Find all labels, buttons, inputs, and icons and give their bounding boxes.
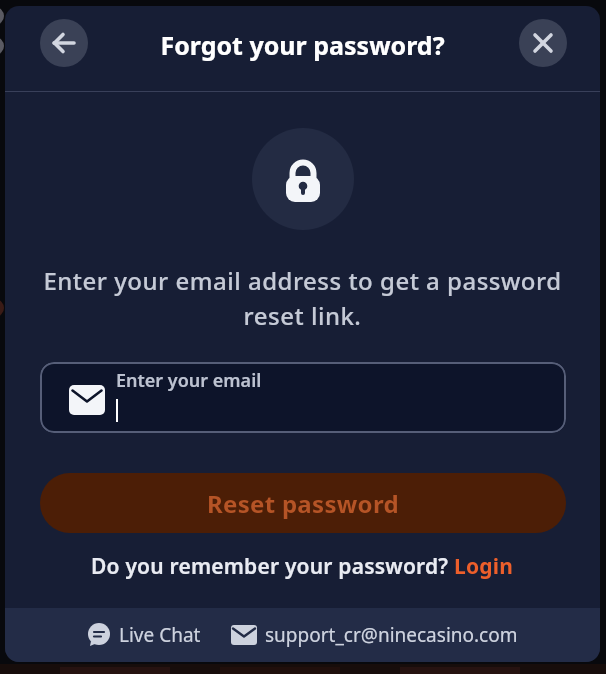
staticText: Enter your email — [116, 368, 262, 393]
staticText: Reset password — [207, 487, 399, 520]
staticText: Enter your email address to get a passwo… — [5, 264, 600, 332]
button[interactable]: Live Chat — [88, 622, 201, 648]
button[interactable]: Reset password — [40, 473, 566, 533]
button[interactable]: support_cr@ninecasino.com — [231, 622, 518, 648]
staticText: Forgot your password? — [5, 28, 600, 62]
button[interactable] — [40, 19, 88, 67]
staticText: Do you remember your password? — [91, 552, 454, 581]
staticText: support_cr@ninecasino.com — [265, 622, 518, 648]
button[interactable]: Enter your email — [40, 362, 566, 433]
staticText: Live Chat — [119, 622, 201, 648]
button[interactable]: Login — [454, 552, 514, 581]
button[interactable] — [519, 19, 567, 67]
